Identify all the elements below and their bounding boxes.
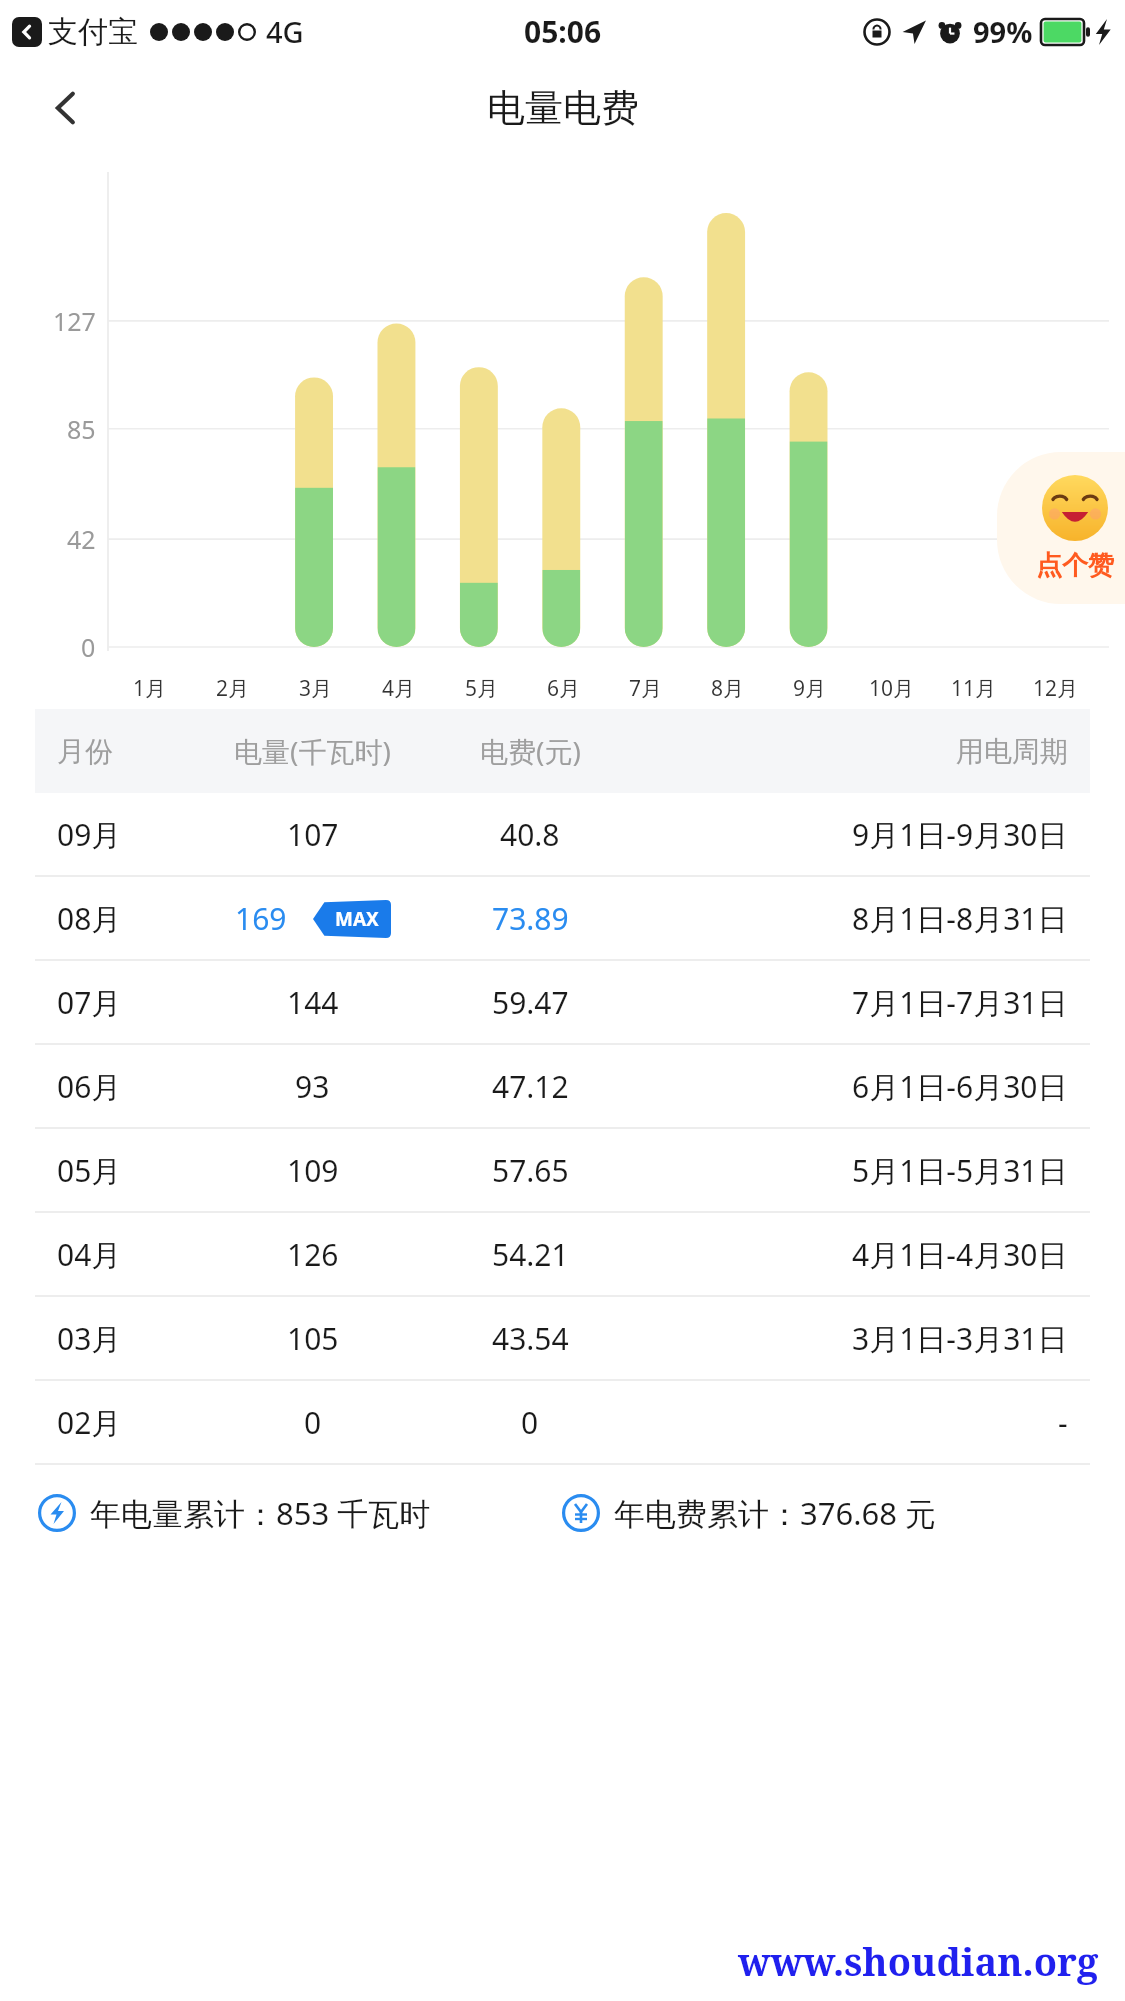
staticText: 105: [287, 1318, 339, 1359]
button[interactable]: 点个赞: [997, 452, 1125, 604]
staticText: 43.54: [492, 1318, 569, 1359]
staticText: 05:06: [524, 11, 602, 52]
staticText: 126: [287, 1234, 339, 1275]
staticText: 1月: [133, 674, 167, 703]
staticText: 99%: [973, 12, 1033, 51]
button[interactable]: 08月: [35, 877, 1090, 959]
staticText: 9月: [793, 674, 827, 703]
staticText: 0: [81, 630, 96, 664]
staticText: 6月: [547, 674, 581, 703]
staticText: 8月1日-8月31日: [852, 898, 1068, 939]
staticText: 169: [235, 898, 287, 939]
staticText: 40.8: [500, 814, 560, 855]
staticText: 10月: [869, 674, 915, 703]
staticText: 9月1日-9月30日: [852, 814, 1068, 855]
staticText: 109: [287, 1150, 339, 1191]
staticText: 点个赞: [1036, 549, 1114, 582]
staticText: 54.21: [492, 1234, 569, 1275]
staticText: 2月: [216, 674, 250, 703]
staticText: 0: [304, 1402, 322, 1443]
staticText: 93: [295, 1066, 330, 1107]
button[interactable]: 09月: [35, 793, 1090, 875]
staticText: 12月: [1033, 674, 1079, 703]
staticText: 年电费累计：376.68 元: [614, 1492, 937, 1534]
staticText: 02月: [57, 1402, 122, 1443]
staticText: 04月: [57, 1234, 122, 1275]
staticText: 8月: [711, 674, 745, 703]
staticText: 144: [287, 982, 339, 1023]
staticText: 4G: [266, 12, 304, 51]
staticText: 电量(千瓦时): [234, 732, 391, 770]
staticText: 月份: [57, 734, 113, 769]
button[interactable]: 返回支付宝: [12, 17, 42, 47]
staticText: 7月1日-7月31日: [852, 982, 1068, 1023]
staticText: 42: [67, 522, 96, 556]
button[interactable]: 返回: [38, 80, 94, 136]
staticText: 57.65: [492, 1150, 569, 1191]
staticText: 用电周期: [956, 734, 1068, 769]
button[interactable]: 04月: [35, 1213, 1090, 1295]
button[interactable]: 03月: [35, 1297, 1090, 1379]
staticText: 07月: [57, 982, 122, 1023]
staticText: 4月: [382, 674, 416, 703]
staticText: MAX: [335, 906, 379, 932]
staticText: 47.12: [492, 1066, 569, 1107]
staticText: 年电量累计：853 千瓦时: [90, 1492, 431, 1534]
button[interactable]: 最大值: [313, 900, 391, 938]
button[interactable]: 05月: [35, 1129, 1090, 1211]
button[interactable]: 06月: [35, 1045, 1090, 1127]
button[interactable]: 年电量累计：853 千瓦时: [38, 1492, 562, 1534]
staticText: 09月: [57, 814, 122, 855]
staticText: 73.89: [492, 898, 569, 939]
staticText: 6月1日-6月30日: [852, 1066, 1068, 1107]
staticText: 3月1日-3月31日: [852, 1318, 1068, 1359]
staticText: 电量电费: [487, 84, 639, 132]
staticText: 11月: [951, 674, 997, 703]
staticText: 支付宝: [48, 13, 138, 51]
staticText: 08月: [57, 898, 122, 939]
staticText: 0: [521, 1402, 539, 1443]
staticText: 7月: [629, 674, 663, 703]
staticText: 05月: [57, 1150, 122, 1191]
button[interactable]: 02月: [35, 1381, 1090, 1463]
staticText: 85: [67, 412, 96, 446]
staticText: 127: [53, 304, 96, 338]
staticText: 4月1日-4月30日: [852, 1234, 1068, 1275]
staticText: 06月: [57, 1066, 122, 1107]
button[interactable]: 年电费累计：376.68 元: [562, 1492, 1087, 1534]
staticText: 107: [287, 814, 339, 855]
staticText: www.shoudian.org: [738, 1935, 1099, 1987]
staticText: 电费(元): [480, 732, 581, 770]
staticText: 3月: [299, 674, 333, 703]
staticText: -: [1058, 1402, 1068, 1443]
staticText: 5月1日-5月31日: [852, 1150, 1068, 1191]
staticText: 5月: [465, 674, 499, 703]
staticText: 59.47: [492, 982, 569, 1023]
staticText: 03月: [57, 1318, 122, 1359]
button[interactable]: 07月: [35, 961, 1090, 1043]
